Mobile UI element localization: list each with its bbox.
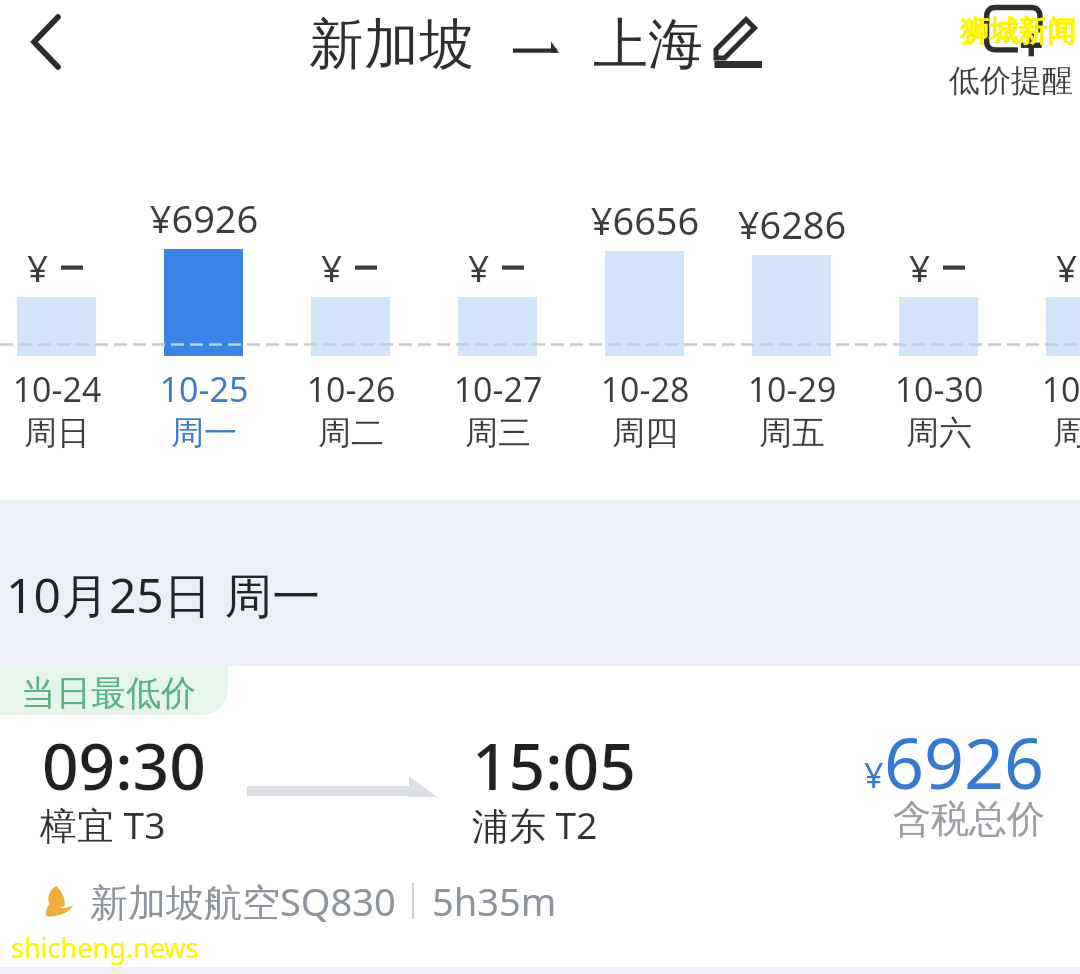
staticText: 10月25日 周一 <box>6 562 321 628</box>
button[interactable]: 10-24 <box>0 366 157 454</box>
staticText: 低价提醒 <box>949 61 1073 100</box>
button[interactable]: 10-28 <box>545 366 745 454</box>
staticText: 当日最低价 <box>21 671 196 715</box>
staticText: 10-25 <box>104 366 304 412</box>
button[interactable]: 10-29 <box>692 366 892 454</box>
staticText: 周二 <box>251 412 451 454</box>
button[interactable]: Back <box>6 8 72 74</box>
button[interactable]: 10-30 <box>839 366 1039 454</box>
staticText: ¥6656 <box>545 194 745 246</box>
staticText: 樟宜 T3 <box>40 799 166 850</box>
button[interactable]: 新加坡 <box>309 10 762 79</box>
staticText: ¥6926 <box>104 192 304 244</box>
staticText: 15:05 <box>472 722 636 809</box>
staticText: ¥ <box>909 242 931 292</box>
button[interactable]: 10-31 <box>986 366 1080 454</box>
staticText: ¥ <box>321 242 343 292</box>
staticText: 10-24 <box>0 366 157 412</box>
staticText: 10-30 <box>839 366 1039 412</box>
staticText: 周一 <box>104 412 304 454</box>
staticText: 09:30 <box>42 722 206 809</box>
staticText: ¥ <box>27 242 49 292</box>
staticText: 上海 <box>593 10 703 79</box>
staticText: 周四 <box>545 412 745 454</box>
staticText: shicheng.news <box>11 929 199 966</box>
button[interactable]: 10-27 <box>398 366 598 454</box>
staticText: 6926 <box>884 714 1045 809</box>
staticText: ¥ <box>468 242 490 292</box>
button[interactable]: 10-25 <box>104 366 304 454</box>
staticText: 周六 <box>839 412 1039 454</box>
staticText: ¥6286 <box>692 198 892 250</box>
staticText: 新加坡 <box>309 10 474 79</box>
staticText: 新加坡航空SQ830 <box>90 875 396 927</box>
staticText: 浦东 T2 <box>472 799 598 850</box>
staticText: 周日 <box>986 412 1080 454</box>
staticText: 10-27 <box>398 366 598 412</box>
staticText: 周日 <box>0 412 157 454</box>
staticText: 10-26 <box>251 366 451 412</box>
staticText: 10-31 <box>986 366 1080 412</box>
button[interactable]: 当日最低价 <box>0 666 1080 974</box>
staticText: 周五 <box>692 412 892 454</box>
staticText: 5h35m <box>432 875 557 927</box>
staticText: 含税总价 <box>893 795 1045 843</box>
button[interactable]: 10-26 <box>251 366 451 454</box>
staticText: 狮城新闻 <box>960 13 1076 50</box>
button[interactable]: 低价提醒 <box>942 0 1080 100</box>
staticText: 10-28 <box>545 366 745 412</box>
staticText: ¥ <box>864 752 884 798</box>
staticText: 10-29 <box>692 366 892 412</box>
staticText: 周三 <box>398 412 598 454</box>
staticText: ¥ <box>1056 242 1078 292</box>
